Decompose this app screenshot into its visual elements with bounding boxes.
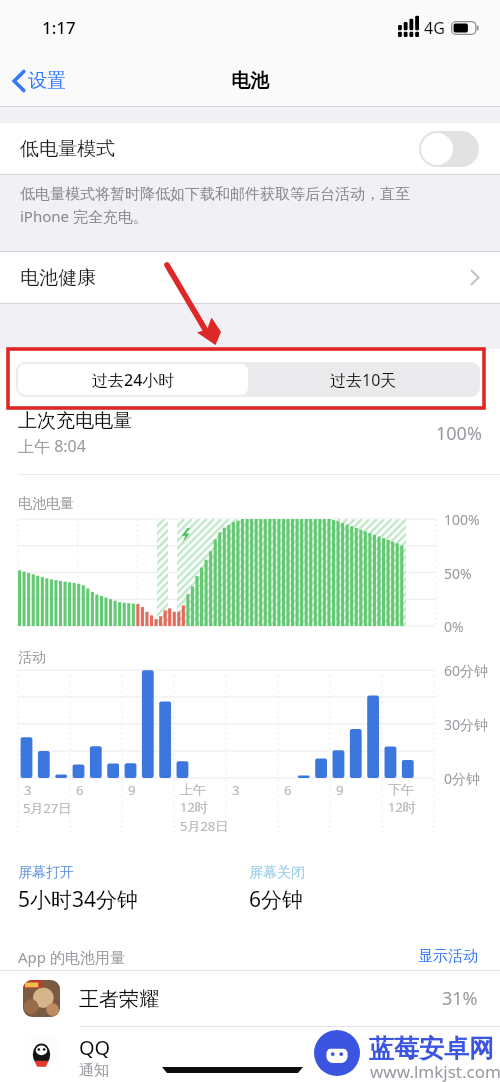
staticText: 6: [284, 781, 292, 799]
staticText: 屏幕关闭: [249, 864, 305, 882]
staticText: 6分钟: [249, 885, 304, 914]
staticText: 5小时34分钟: [18, 885, 139, 914]
staticText: 3: [232, 781, 240, 799]
staticText: 5月28日: [180, 817, 229, 835]
staticText: 上午 8:04: [18, 435, 86, 457]
staticText: 3: [24, 781, 32, 799]
staticText: 100%: [436, 421, 482, 446]
button[interactable]: 过去10天: [248, 364, 478, 395]
staticText: 蓝莓安卓网: [369, 1033, 494, 1064]
staticText: 王者荣耀: [79, 987, 159, 1012]
staticText: 电池电量: [18, 495, 74, 513]
staticText: 60分钟: [444, 661, 489, 680]
staticText: 6: [76, 781, 84, 799]
staticText: 上次充电电量: [18, 409, 132, 433]
staticText: 活动: [18, 649, 46, 667]
staticText: 0%: [444, 617, 464, 636]
button[interactable]: QQ: [0, 1027, 500, 1082]
staticText: App 的电池用量: [18, 947, 125, 967]
button[interactable]: 设置: [8, 64, 70, 98]
staticText: 4G: [424, 17, 445, 39]
staticText: 1:17: [42, 16, 76, 39]
button[interactable]: 王者荣耀: [0, 971, 500, 1026]
staticText: 100%: [444, 510, 480, 529]
staticText: 过去10天: [330, 369, 397, 391]
staticText: 9: [336, 781, 344, 799]
staticText: 过去24小时: [92, 369, 175, 391]
staticText: 通知: [79, 1061, 109, 1080]
staticText: 5月27日: [23, 799, 72, 817]
staticText: 50%: [444, 564, 472, 583]
button[interactable]: Low Power Mode toggle: [419, 131, 479, 167]
staticText: 下午 12时: [388, 781, 416, 816]
staticText: 设置: [28, 69, 66, 93]
button[interactable]: 电池健康: [0, 252, 500, 303]
staticText: 电池健康: [20, 266, 96, 290]
staticText: 屏幕打开: [18, 864, 74, 882]
staticText: 31%: [442, 986, 478, 1011]
staticText: 电池: [231, 69, 269, 93]
staticText: 9: [128, 781, 136, 799]
button[interactable]: 显示活动: [418, 947, 478, 966]
staticText: 低电量模式: [20, 137, 115, 161]
button[interactable]: 过去24小时: [18, 364, 248, 395]
staticText: 30分钟: [444, 715, 489, 734]
staticText: 低电量模式将暂时降低如下载和邮件获取等后台活动，直至 iPhone 完全充电。: [20, 185, 410, 227]
staticText: www.lmkjst.com: [370, 1060, 500, 1082]
staticText: 上午 12时: [180, 781, 208, 816]
staticText: 0分钟: [444, 769, 481, 788]
staticText: QQ: [79, 1034, 111, 1061]
